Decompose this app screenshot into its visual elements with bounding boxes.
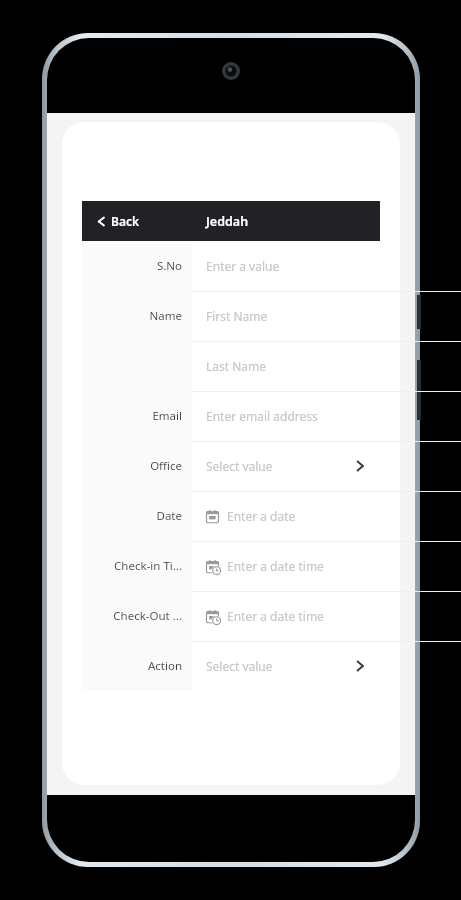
staticText: Select value: [206, 458, 354, 474]
staticText: Action: [147, 658, 182, 674]
staticText: Email: [152, 408, 182, 424]
staticText: Jeddah: [206, 213, 249, 230]
staticText: Back: [111, 213, 140, 229]
staticText: Enter a date time: [227, 608, 366, 624]
button[interactable]: Action: [82, 641, 380, 691]
staticText: Date: [156, 508, 182, 524]
button[interactable]: Last Name: [82, 341, 380, 391]
staticText: Office: [150, 458, 182, 474]
staticText: S.No: [156, 258, 182, 274]
staticText: Check-Out ...: [113, 608, 182, 624]
button[interactable]: Office: [82, 441, 380, 491]
button[interactable]: Back: [92, 209, 144, 233]
other: Open selector: [354, 460, 366, 472]
staticText: Last Name: [206, 358, 366, 374]
staticText: Select value: [206, 658, 354, 674]
staticText: Enter email address: [206, 408, 366, 424]
staticText: Enter a date: [227, 508, 366, 524]
button[interactable]: Check-Out ...: [82, 591, 380, 641]
button[interactable]: Check-in Ti...: [82, 541, 380, 591]
staticText: Enter a date time: [227, 558, 366, 574]
staticText: Check-in Ti...: [114, 558, 182, 574]
staticText: Name: [149, 308, 182, 324]
staticText: Enter a value: [206, 258, 366, 274]
button[interactable]: Date: [82, 491, 380, 541]
button[interactable]: S.No: [82, 241, 380, 291]
button[interactable]: Email: [82, 391, 380, 441]
button[interactable]: Name: [82, 291, 380, 341]
staticText: First Name: [206, 308, 366, 324]
other: Open selector: [354, 660, 366, 672]
